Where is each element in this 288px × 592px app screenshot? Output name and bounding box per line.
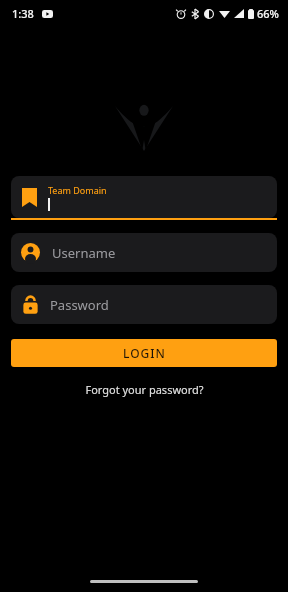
button[interactable]: Forgot your password?	[11, 382, 277, 397]
staticText: Password	[50, 296, 109, 314]
staticText: 1:38	[12, 6, 34, 21]
staticText: Forgot your password?	[85, 382, 204, 397]
staticText: Username	[52, 244, 116, 262]
staticText: Team Domain	[48, 184, 107, 196]
staticText: LOGIN	[123, 345, 166, 361]
button[interactable]: Username	[11, 233, 277, 272]
button[interactable]: Team Domain	[11, 176, 277, 218]
button[interactable]: Password	[11, 285, 277, 324]
staticText: 66%	[257, 6, 279, 21]
button[interactable]: LOGIN	[11, 339, 277, 367]
